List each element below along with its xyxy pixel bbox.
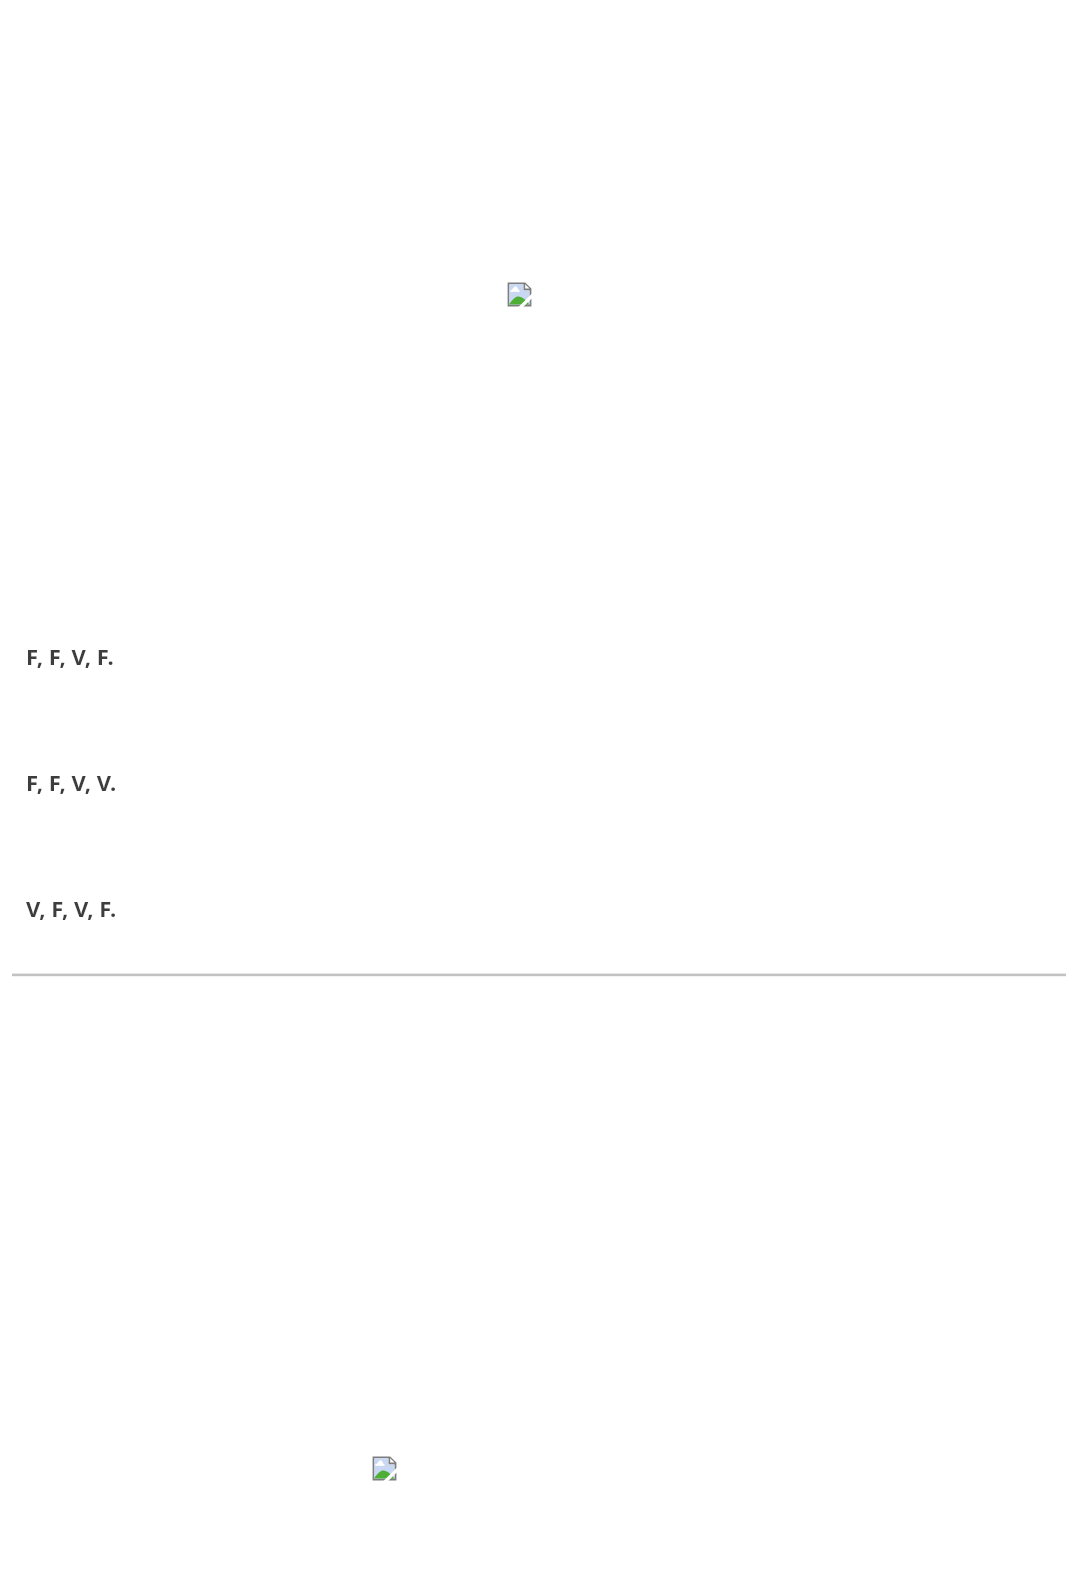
staticText: F, F, V, F. <box>26 641 114 671</box>
staticText: V, F, V, F. <box>26 893 117 923</box>
button[interactable]: Image failed to load <box>372 1456 397 1481</box>
staticText: F, F, V, V. <box>26 767 117 797</box>
button[interactable]: Image failed to load <box>507 282 532 307</box>
